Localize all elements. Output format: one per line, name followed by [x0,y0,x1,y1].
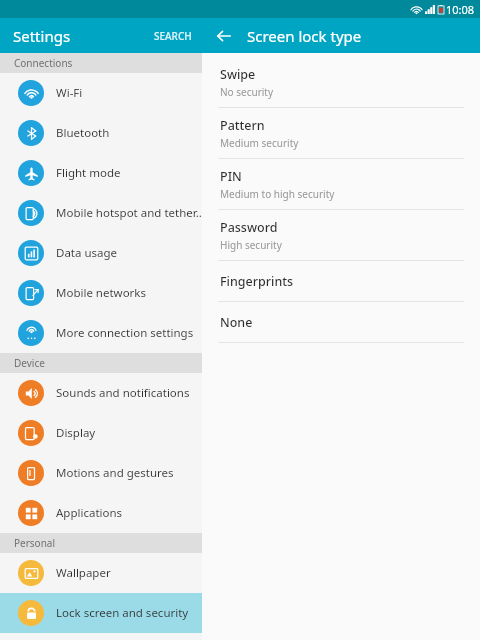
staticText: Applications [56,505,123,521]
staticText: Pattern [220,117,265,134]
button[interactable]: Swipe [202,57,480,108]
staticText: Connections [14,56,73,70]
staticText: Fingerprints [220,273,294,290]
button[interactable]: Data usage [0,233,202,273]
button[interactable]: Mobile hotspot and tether.. [0,193,202,233]
staticText: Medium security [220,136,299,150]
button[interactable]: PIN [202,159,480,210]
button[interactable]: Lock screen and security [0,593,202,633]
staticText: PIN [220,168,242,185]
button[interactable]: More connection settings [0,313,202,353]
staticText: Flight mode [56,165,121,181]
staticText: Device [14,356,45,370]
button[interactable]: Motions and gestures [0,453,202,493]
button[interactable]: Flight mode [0,153,202,193]
staticText: Swipe [220,66,256,83]
button[interactable]: Mobile networks [0,273,202,313]
staticText: Medium to high security [220,187,335,201]
button[interactable]: SEARCH [144,23,202,49]
button[interactable]: Bluetooth [0,113,202,153]
staticText: More connection settings [56,325,194,341]
button[interactable]: Fingerprints [202,261,480,302]
button[interactable]: Back [210,22,238,50]
button[interactable]: Password [202,210,480,261]
staticText: Password [220,219,278,236]
button[interactable]: Wallpaper [0,553,202,593]
staticText: Data usage [56,245,118,261]
button[interactable]: Wi-Fi [0,73,202,113]
staticText: Wi-Fi [56,85,83,101]
button[interactable]: Pattern [202,108,480,159]
staticText: 10:08 [446,2,475,17]
staticText: Motions and gestures [56,465,174,481]
staticText: Lock screen and security [56,605,189,621]
staticText: Bluetooth [56,125,110,141]
staticText: SEARCH [154,29,192,43]
staticText: Screen lock type [247,26,362,46]
staticText: No security [220,85,274,99]
button[interactable]: Applications [0,493,202,533]
staticText: Settings [13,26,71,46]
staticText: Wallpaper [56,565,111,581]
staticText: High security [220,238,282,252]
button[interactable]: Sounds and notifications [0,373,202,413]
staticText: Display [56,425,96,441]
button[interactable]: Display [0,413,202,453]
staticText: None [220,314,253,331]
staticText: Sounds and notifications [56,385,190,401]
staticText: Mobile hotspot and tether.. [56,205,202,221]
button[interactable]: None [202,302,480,343]
staticText: Mobile networks [56,285,147,301]
staticText: Personal [14,536,56,550]
